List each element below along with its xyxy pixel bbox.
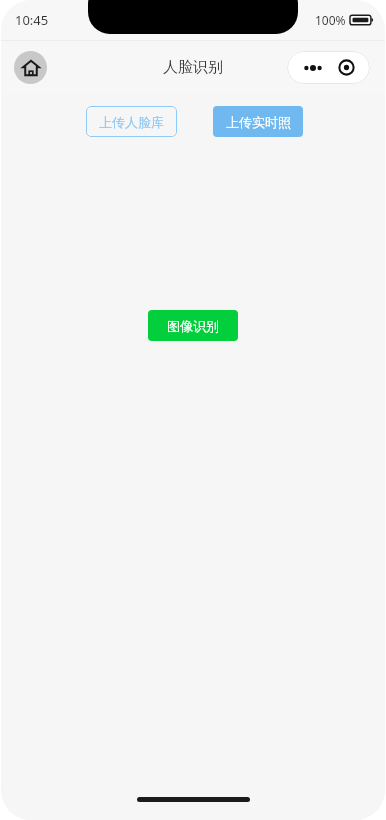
- button[interactable]: Menu and Close: [287, 51, 370, 84]
- staticText: 上传人脸库: [99, 114, 164, 130]
- staticText: 100%: [315, 12, 346, 28]
- button[interactable]: 上传实时照: [213, 106, 303, 137]
- staticText: 上传实时照: [226, 114, 291, 130]
- button[interactable]: 图像识别: [148, 310, 238, 341]
- button[interactable]: 上传人脸库: [86, 106, 177, 137]
- staticText: 10:45: [15, 11, 49, 29]
- button[interactable]: Home: [14, 51, 47, 84]
- staticText: 图像识别: [167, 318, 219, 334]
- staticText: 人脸识别: [163, 58, 223, 77]
